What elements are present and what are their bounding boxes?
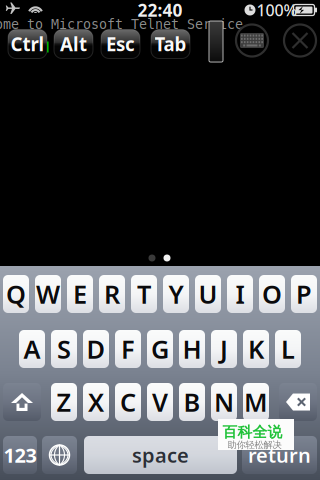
button[interactable]: E <box>67 275 93 313</box>
staticText: A <box>23 332 40 366</box>
staticText: B <box>183 385 200 419</box>
staticText: U <box>198 277 217 311</box>
button[interactable] <box>279 383 317 421</box>
staticText: Z <box>56 385 71 419</box>
button[interactable]: W <box>35 275 61 313</box>
button[interactable]: H <box>179 330 205 368</box>
staticText: return <box>248 442 311 468</box>
button[interactable]: Esc <box>101 29 140 58</box>
button[interactable]: Y <box>163 275 189 313</box>
button[interactable]: A <box>19 330 45 368</box>
button[interactable]: X <box>83 383 109 421</box>
button[interactable]: F <box>115 330 141 368</box>
button[interactable]: G <box>147 330 173 368</box>
staticText: X <box>88 385 104 419</box>
staticText: 百科全说 <box>222 423 282 441</box>
staticText: 22:40 <box>137 0 182 21</box>
button[interactable]: L <box>275 330 301 368</box>
staticText: Alt <box>60 32 87 56</box>
staticText: H <box>182 332 201 366</box>
staticText: space <box>132 442 189 468</box>
staticText: K <box>248 332 264 366</box>
staticText: Ctrl <box>10 32 44 56</box>
staticText: P <box>296 277 312 311</box>
button[interactable]: R <box>99 275 125 313</box>
staticText: M <box>244 385 268 419</box>
button[interactable]: Alt <box>54 29 93 58</box>
button[interactable] <box>3 383 41 421</box>
staticText: W <box>36 277 60 311</box>
button[interactable]: J <box>211 330 237 368</box>
button[interactable]: Show keyboard <box>233 21 271 59</box>
staticText: Welcome to Microsoft Telnet Service <box>0 17 243 32</box>
staticText: E <box>73 277 87 311</box>
button[interactable]: O <box>259 275 285 313</box>
staticText: R <box>104 277 120 311</box>
button[interactable]: V <box>147 383 173 421</box>
button[interactable]: Close session <box>281 21 319 59</box>
staticText: F <box>121 332 135 366</box>
staticText: G <box>151 332 169 366</box>
button[interactable] <box>42 436 77 474</box>
staticText: L <box>281 332 295 366</box>
staticText: D <box>86 332 105 366</box>
button[interactable]: 123 <box>3 436 37 474</box>
button[interactable]: U <box>195 275 221 313</box>
button[interactable]: C <box>115 383 141 421</box>
staticText: 助你轻松解决 <box>227 439 281 451</box>
button[interactable]: T <box>131 275 157 313</box>
staticText: J <box>220 332 228 366</box>
button[interactable]: P <box>291 275 317 313</box>
button[interactable]: B <box>179 383 205 421</box>
staticText: Y <box>168 277 183 311</box>
staticText: Esc <box>106 32 135 56</box>
button[interactable]: D <box>83 330 109 368</box>
button[interactable]: K <box>243 330 269 368</box>
staticText: O <box>262 277 282 311</box>
button[interactable]: Ctrl <box>8 29 47 58</box>
button[interactable]: N <box>211 383 237 421</box>
button[interactable]: space <box>84 436 237 474</box>
staticText: 100% <box>256 0 297 21</box>
button[interactable]: Z <box>51 383 77 421</box>
button[interactable]: I <box>227 275 253 313</box>
button[interactable]: Q <box>3 275 29 313</box>
button[interactable]: Tab <box>151 29 190 58</box>
staticText: 123 <box>3 442 36 468</box>
staticText: Q <box>6 277 26 311</box>
staticText: Tab <box>154 32 186 56</box>
button[interactable]: return <box>242 436 317 474</box>
staticText: S <box>57 332 71 366</box>
button[interactable]: S <box>51 330 77 368</box>
staticText: C <box>120 385 136 419</box>
staticText: T <box>137 277 151 311</box>
staticText: N <box>214 385 234 419</box>
button[interactable]: M <box>243 383 269 421</box>
staticText: I <box>235 277 244 311</box>
staticText: V <box>152 385 168 419</box>
